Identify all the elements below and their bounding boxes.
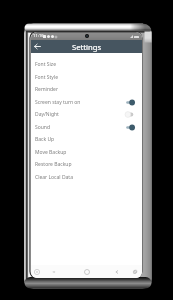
staticText: Settings	[72, 42, 102, 52]
button[interactable]: Clear Local Data	[31, 171, 142, 183]
staticText: Clear Local Data	[35, 174, 142, 181]
button[interactable]: Keyboard	[49, 265, 59, 278]
button[interactable]: Day/Night	[31, 108, 142, 120]
staticText: Sound	[35, 124, 125, 131]
button[interactable]: Restore Backup	[31, 158, 142, 170]
button[interactable]: Back	[31, 40, 44, 53]
button[interactable]: Screen stay turn on	[31, 96, 142, 108]
staticText: Screen stay turn on	[35, 99, 125, 106]
button[interactable]: Font Size	[31, 58, 142, 70]
staticText: Day/Night	[35, 111, 125, 118]
button[interactable]: Home	[82, 265, 92, 278]
staticText: Move Backup	[35, 149, 142, 156]
staticText: 11:16	[33, 33, 44, 39]
button[interactable]: Recent apps	[130, 265, 140, 278]
button[interactable]: Assistant	[32, 265, 42, 278]
button[interactable]: Back Up	[31, 133, 142, 145]
staticText: Reminder	[35, 86, 142, 93]
staticText: Font Style	[35, 74, 142, 81]
staticText: Back Up	[35, 136, 142, 143]
button[interactable]: Sound	[31, 121, 142, 133]
button[interactable]: Font Style	[31, 71, 142, 83]
button[interactable]: Back	[112, 265, 122, 278]
staticText: Restore Backup	[35, 161, 142, 168]
button[interactable]: Reminder	[31, 83, 142, 95]
staticText: Font Size	[35, 61, 142, 68]
button[interactable]: Move Backup	[31, 146, 142, 158]
